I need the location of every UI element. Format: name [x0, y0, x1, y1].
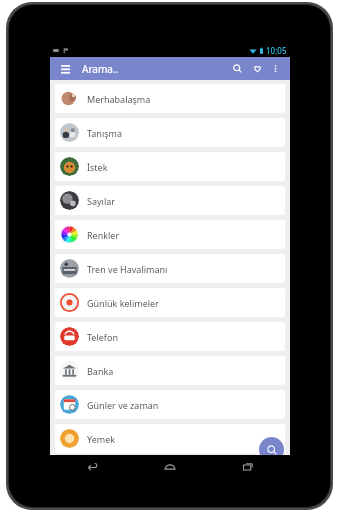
button[interactable]: Banka — [55, 356, 285, 385]
button[interactable]: Favorites — [249, 60, 266, 77]
staticText: Banka — [87, 365, 114, 377]
staticText: Merhabalaşma — [87, 93, 151, 105]
button[interactable]: Tanışma — [55, 118, 285, 147]
staticText: 10:05 — [266, 45, 287, 56]
button[interactable]: Back — [75, 455, 109, 479]
staticText: Tanışma — [87, 127, 122, 139]
staticText: İstek — [87, 161, 108, 173]
staticText: Arama.. — [82, 62, 119, 76]
button[interactable]: İstek — [55, 152, 285, 181]
button[interactable]: Telefon — [55, 322, 285, 351]
staticText: Tren ve Havalimanı — [87, 263, 168, 275]
button[interactable]: Günler ve zaman — [55, 390, 285, 419]
staticText: Renkler — [87, 229, 120, 241]
staticText: Sayılar — [87, 195, 115, 207]
button[interactable]: Yemek — [55, 424, 285, 453]
button[interactable]: Search — [259, 437, 284, 462]
staticText: Günlük kelimeler — [87, 297, 159, 309]
button[interactable]: Renkler — [55, 220, 285, 249]
button[interactable]: Recents — [231, 455, 265, 479]
button[interactable]: Home — [153, 455, 187, 479]
staticText: Günler ve zaman — [87, 399, 159, 411]
staticText: Yemek — [87, 433, 116, 445]
button[interactable]: More options — [268, 61, 283, 76]
button[interactable]: Merhabalaşma — [55, 84, 285, 113]
button[interactable]: Sayılar — [55, 186, 285, 215]
button[interactable]: Günlük kelimeler — [55, 288, 285, 317]
button[interactable]: Tren ve Havalimanı — [55, 254, 285, 283]
staticText: Telefon — [87, 331, 118, 343]
button[interactable]: Menu — [57, 61, 73, 77]
button[interactable]: Search — [229, 60, 246, 77]
